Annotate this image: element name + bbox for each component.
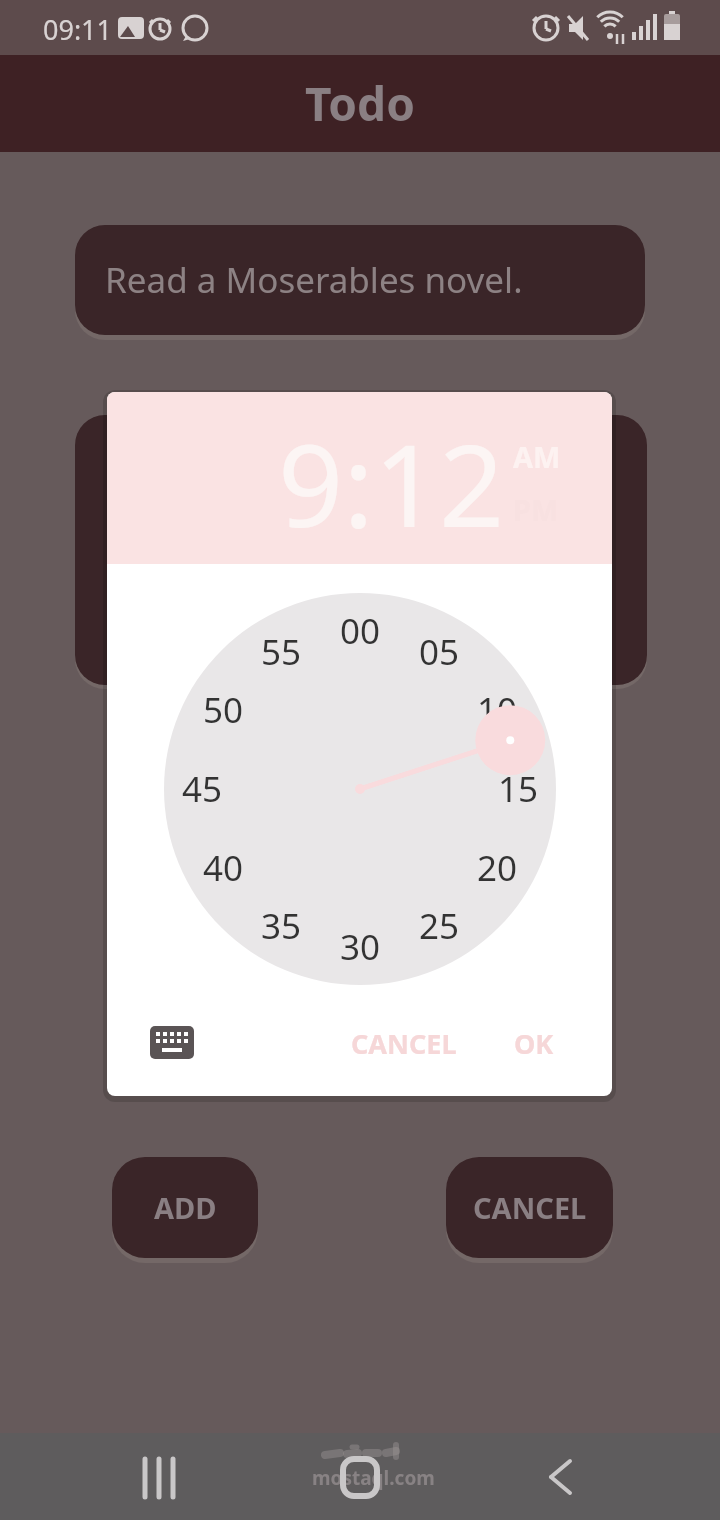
staticText: 55: [261, 628, 302, 676]
button[interactable]: 50: [183, 682, 263, 738]
staticText: 50: [203, 686, 244, 734]
staticText: mostaql.com: [312, 1465, 435, 1491]
staticText: 10: [477, 686, 518, 734]
button[interactable]: Read a Moserables novel.: [75, 225, 645, 335]
button[interactable]: 05: [399, 624, 479, 680]
button[interactable]: [150, 1026, 194, 1059]
staticText: 25: [419, 902, 460, 950]
button[interactable]: OK: [499, 1022, 569, 1064]
staticText: 00: [340, 607, 381, 655]
button[interactable]: 00: [320, 603, 400, 659]
staticText: OK: [514, 1025, 554, 1062]
button[interactable]: 15: [478, 761, 558, 817]
staticText: 15: [498, 765, 539, 813]
staticText: 09:11: [43, 11, 113, 48]
button[interactable]: [325, 1445, 395, 1509]
button[interactable]: ADD: [112, 1157, 258, 1258]
staticText: 30: [340, 923, 381, 971]
button[interactable]: CANCEL: [446, 1157, 613, 1258]
staticText: CANCEL: [473, 1188, 587, 1227]
button[interactable]: 40: [183, 840, 263, 896]
button[interactable]: [125, 1445, 195, 1509]
staticText: ADD: [154, 1188, 217, 1227]
staticText: Todo: [305, 72, 415, 135]
button[interactable]: AM: [513, 437, 561, 476]
button[interactable]: 35: [241, 898, 321, 954]
button[interactable]: 55: [241, 624, 321, 680]
staticText: Read a Moserables novel.: [105, 256, 523, 304]
button[interactable]: 20: [457, 840, 537, 896]
staticText: 05: [419, 628, 460, 676]
staticText: 40: [203, 844, 244, 892]
button[interactable]: 45: [162, 761, 242, 817]
button[interactable]: [525, 1445, 595, 1509]
staticText: 35: [261, 902, 302, 950]
button[interactable]: 10: [457, 682, 537, 738]
staticText: 9:12: [278, 405, 505, 560]
staticText: CANCEL: [351, 1025, 457, 1062]
button[interactable]: 30: [320, 919, 400, 975]
staticText: 45: [182, 765, 223, 813]
button[interactable]: CANCEL: [329, 1022, 479, 1064]
button[interactable]: 25: [399, 898, 479, 954]
staticText: 20: [477, 844, 518, 892]
